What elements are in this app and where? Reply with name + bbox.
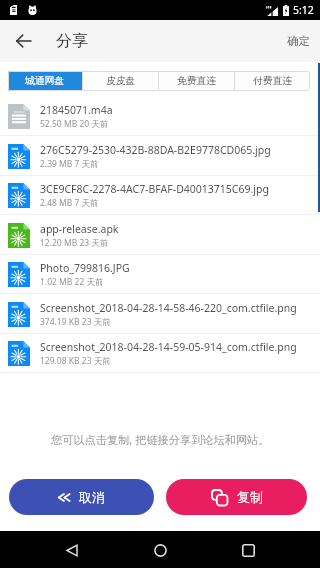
staticText: 1.02 MB 22 天前 (40, 276, 104, 288)
staticText: Photo_799816.JPG (40, 261, 130, 275)
staticText: Screenshot_2018-04-28-14-58-46-220_com.c… (40, 301, 297, 315)
button[interactable]: 3CE9CF8C-2278-4AC7-BFAF-D40013715C69.jpg (0, 176, 320, 215)
button[interactable]: 276C5279-2530-432B-88DA-B2E9778CD065.jpg (0, 137, 320, 176)
staticText: 取消 (79, 489, 105, 505)
staticText: 皮皮盘 (106, 75, 136, 87)
button[interactable]: 城通网盘 (8, 71, 82, 91)
staticText: 12.20 MB 23 天前 (40, 237, 109, 249)
staticText: 复制 (237, 489, 263, 505)
staticText: 城通网盘 (25, 75, 65, 87)
staticText: 2.48 MB 7 天前 (40, 197, 99, 209)
staticText: Screenshot_2018-04-28-14-59-05-914_com.c… (40, 340, 297, 354)
button[interactable]: 取消 (9, 479, 154, 515)
staticText: 您可以点击复制, 把链接分享到论坛和网站。 (51, 432, 270, 447)
button[interactable]: 21845071.m4a (0, 97, 320, 136)
staticText: 52.50 MB 20 天前 (40, 118, 109, 130)
button[interactable]: Screenshot_2018-04-28-14-58-46-220_com.c… (0, 295, 320, 334)
staticText: 5:12 (293, 3, 314, 17)
staticText: 确定 (287, 34, 310, 48)
button[interactable]: app-release.apk (0, 216, 320, 255)
staticText: 276C5279-2530-432B-88DA-B2E9778CD065.jpg (40, 143, 271, 157)
button[interactable]: 付费直连 (235, 71, 310, 91)
staticText: 分享 (56, 31, 88, 51)
button[interactable]: 复制 (166, 479, 307, 515)
button[interactable]: Back (8, 26, 38, 56)
button[interactable]: 皮皮盘 (83, 71, 158, 91)
button[interactable]: Recents (232, 534, 264, 566)
button[interactable]: 免费直连 (159, 71, 234, 91)
staticText: 3CE9CF8C-2278-4AC7-BFAF-D40013715C69.jpg (40, 182, 269, 196)
staticText: 免费直连 (177, 75, 217, 87)
button[interactable]: Back (56, 534, 88, 566)
staticText: 21845071.m4a (40, 103, 113, 117)
button[interactable]: Screenshot_2018-04-28-14-59-05-914_com.c… (0, 334, 320, 373)
staticText: app-release.apk (40, 222, 119, 236)
staticText: 2.39 MB 7 天前 (40, 158, 99, 170)
button[interactable]: Home (144, 534, 176, 566)
staticText: 129.08 KB 23 天前 (40, 355, 111, 367)
staticText: 付费直连 (253, 75, 293, 87)
staticText: 374.19 KB 23 天前 (40, 316, 111, 328)
button[interactable]: Photo_799816.JPG (0, 255, 320, 294)
button[interactable]: 确定 (281, 26, 316, 56)
